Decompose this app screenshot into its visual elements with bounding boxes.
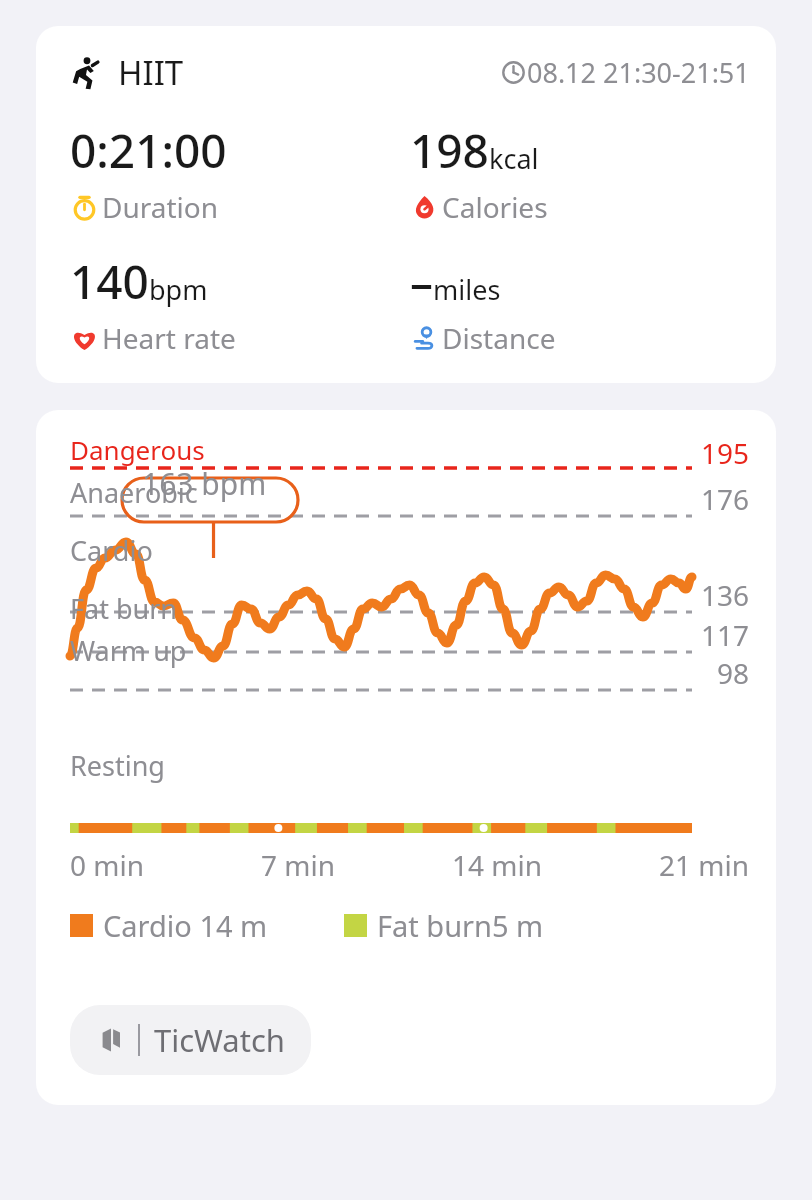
- staticText: Cardio 14 m: [103, 906, 268, 945]
- staticText: HIIT: [118, 50, 184, 95]
- staticText: kcal: [489, 140, 539, 177]
- staticText: 98: [717, 654, 750, 692]
- staticText: Warm up: [70, 632, 187, 669]
- other: Time: [502, 61, 525, 84]
- staticText: Heart rate: [102, 319, 236, 357]
- staticText: 0:21:00: [70, 119, 227, 182]
- staticText: 7 min: [261, 846, 336, 884]
- staticText: 08.12 21:30-21:51: [527, 54, 750, 91]
- button[interactable]: 0:21:00: [70, 119, 410, 226]
- button[interactable]: Fat burn5 m: [344, 906, 544, 945]
- staticText: 136: [701, 576, 750, 614]
- staticText: 21 min: [659, 846, 750, 884]
- staticText: –: [410, 250, 433, 313]
- staticText: Distance: [442, 319, 556, 357]
- staticText: 14 min: [452, 846, 543, 884]
- button[interactable]: 198: [410, 119, 750, 226]
- staticText: Fat burn: [70, 590, 178, 627]
- staticText: Fat burn5 m: [377, 906, 544, 945]
- staticText: Resting: [70, 747, 165, 784]
- button[interactable]: –: [410, 250, 750, 357]
- staticText: 198: [410, 119, 489, 182]
- staticText: Calories: [442, 188, 548, 226]
- staticText: Anaerobic: [70, 474, 198, 511]
- staticText: TicWatch: [154, 1019, 285, 1061]
- staticText: Cardio: [70, 532, 153, 569]
- staticText: 195: [701, 434, 750, 472]
- staticText: 176: [701, 480, 750, 518]
- staticText: 163 bpm: [142, 463, 267, 504]
- staticText: Dangerous: [70, 432, 205, 467]
- button[interactable]: 140: [70, 250, 410, 357]
- button[interactable]: TicWatch: [70, 1005, 311, 1075]
- staticText: miles: [433, 271, 501, 308]
- staticText: Duration: [102, 188, 219, 226]
- staticText: bpm: [149, 271, 208, 308]
- staticText: 0 min: [70, 846, 145, 884]
- staticText: 140: [70, 250, 149, 313]
- button[interactable]: Cardio 14 m: [70, 906, 268, 945]
- staticText: 117: [701, 616, 750, 654]
